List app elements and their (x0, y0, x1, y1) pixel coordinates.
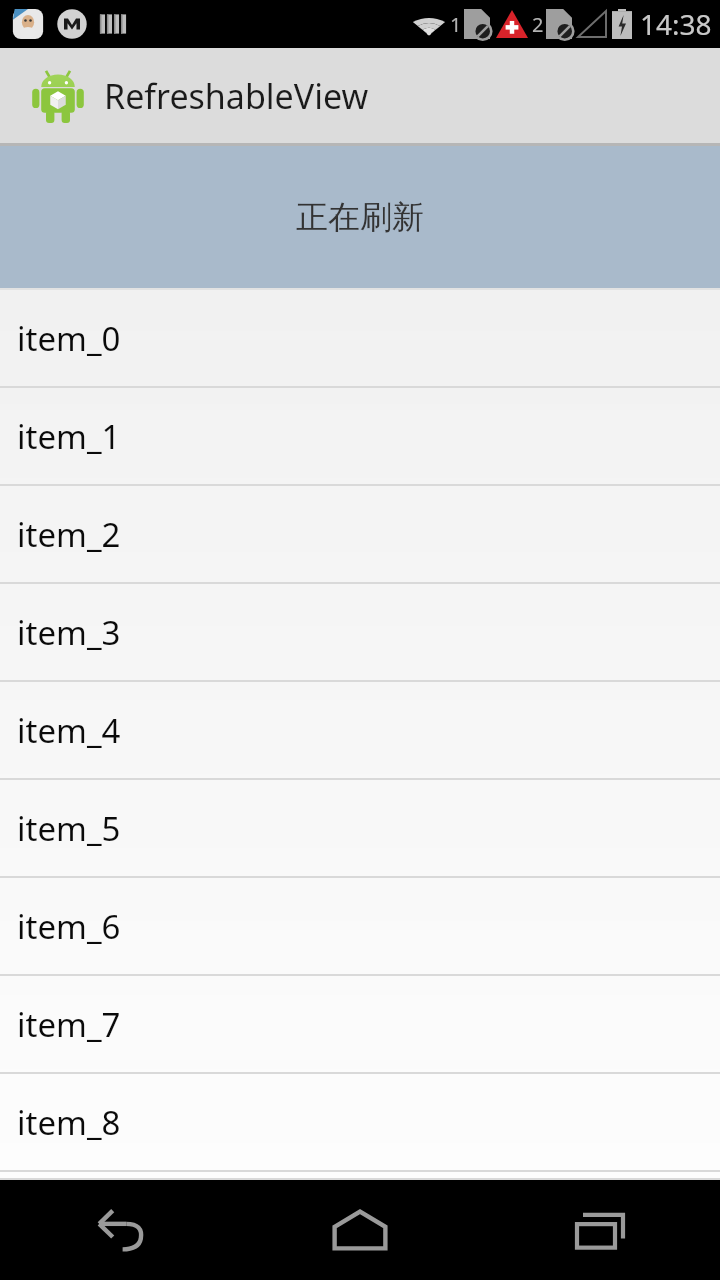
staticText: item_1 (17, 414, 121, 459)
staticText: item_0 (17, 316, 121, 361)
staticText: 2 (532, 11, 544, 38)
button[interactable]: item_2 (0, 486, 720, 582)
staticText: 14:38 (640, 5, 712, 43)
staticText: item_3 (17, 610, 121, 655)
button[interactable]: item_6 (0, 878, 720, 974)
button[interactable]: item_3 (0, 584, 720, 680)
staticText: 正在刷新 (296, 197, 424, 237)
button[interactable]: Recent apps (480, 1180, 720, 1280)
staticText: item_5 (17, 806, 121, 851)
button[interactable]: Back (0, 1180, 240, 1280)
button[interactable]: item_8 (0, 1074, 720, 1170)
staticText: item_4 (17, 708, 121, 753)
button[interactable]: item_1 (0, 388, 720, 484)
staticText: item_2 (17, 512, 121, 557)
button[interactable]: item_4 (0, 682, 720, 778)
button[interactable]: item_7 (0, 976, 720, 1072)
button[interactable]: 正在刷新 (0, 146, 720, 288)
staticText: RefreshableView (104, 73, 369, 119)
button[interactable]: item_5 (0, 780, 720, 876)
button[interactable]: item_0 (0, 290, 720, 386)
staticText: item_8 (17, 1100, 121, 1145)
staticText: item_6 (17, 904, 121, 949)
button[interactable]: Home (240, 1180, 480, 1280)
staticText: 1 (450, 11, 462, 38)
staticText: item_7 (17, 1002, 121, 1047)
